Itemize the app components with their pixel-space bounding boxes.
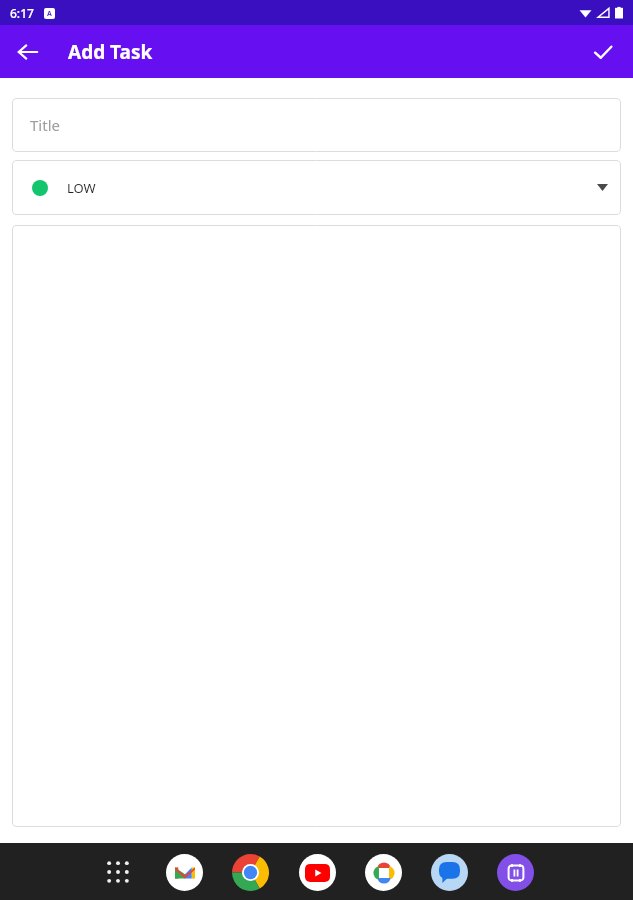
button[interactable]: Gmail: [162, 850, 206, 894]
button[interactable]: App: [493, 850, 537, 894]
button[interactable]: Back: [6, 30, 50, 74]
button[interactable]: Save task: [581, 30, 625, 74]
button[interactable]: Messages: [427, 850, 471, 894]
staticText: Title: [30, 115, 60, 135]
button[interactable]: All apps: [96, 850, 140, 894]
button[interactable]: Photos: [361, 850, 405, 894]
staticText: LOW: [67, 179, 96, 197]
button[interactable]: LOW: [12, 160, 621, 215]
staticText: A: [47, 9, 52, 19]
button[interactable]: Title: [12, 98, 621, 152]
staticText: Add Task: [68, 39, 153, 65]
button[interactable]: YouTube: [295, 850, 339, 894]
staticText: 6:17: [10, 5, 34, 21]
button[interactable]: Chrome: [228, 850, 272, 894]
